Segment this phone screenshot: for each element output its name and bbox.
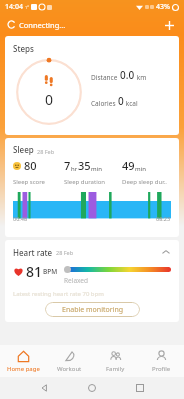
- staticText: 00:48: [13, 215, 28, 222]
- staticText: km: [135, 73, 147, 82]
- staticText: 28 Feb: [56, 249, 74, 256]
- staticText: min: [135, 165, 146, 173]
- staticText: 0: [45, 90, 54, 109]
- staticText: Latest resting heart rate 70 bpm: [13, 290, 104, 298]
- staticText: hr: [71, 165, 78, 173]
- staticText: 0.0: [120, 68, 135, 82]
- button[interactable]: Steps: [5, 36, 179, 135]
- staticText: 43%: [156, 2, 170, 12]
- staticText: Sleep: [13, 144, 34, 155]
- button[interactable]: Family: [92, 345, 138, 377]
- button[interactable]: Workout: [46, 345, 92, 377]
- button[interactable]: Home page: [0, 345, 46, 377]
- staticText: Calories: [91, 99, 118, 108]
- staticText: 28 Feb: [37, 148, 55, 155]
- staticText: Enable monitoring: [62, 305, 124, 315]
- staticText: 81: [26, 262, 43, 281]
- staticText: Steps: [13, 43, 34, 54]
- staticText: Relaxed: [64, 276, 89, 285]
- staticText: Sleep score: [13, 178, 45, 186]
- staticText: 80: [24, 158, 37, 173]
- staticText: Deep sleep dur..: [122, 178, 167, 186]
- button[interactable]: Sleep: [5, 138, 179, 237]
- button[interactable]: Enable monitoring: [45, 302, 140, 317]
- button[interactable]: Add device: [161, 17, 177, 33]
- staticText: min: [91, 165, 102, 173]
- button[interactable]: Collapse: [160, 246, 172, 258]
- staticText: Distance: [91, 73, 120, 82]
- staticText: 1ª: [25, 5, 29, 10]
- staticText: Profile: [152, 365, 171, 373]
- button[interactable]: Heart rate: [5, 240, 179, 322]
- staticText: 08:23: [156, 215, 171, 222]
- button[interactable]: Profile: [138, 345, 184, 377]
- staticText: 7: [64, 158, 71, 173]
- staticText: 35: [78, 158, 91, 173]
- staticText: Workout: [57, 365, 82, 373]
- staticText: 49: [122, 158, 135, 173]
- staticText: kcal: [124, 99, 138, 108]
- staticText: Heart rate: [13, 247, 53, 258]
- staticText: Connecting...: [19, 20, 66, 30]
- staticText: BPM: [43, 267, 58, 276]
- staticText: Family: [106, 365, 125, 373]
- staticText: Home page: [7, 365, 40, 373]
- staticText: 0: [118, 94, 124, 108]
- staticText: 14:04: [5, 2, 23, 12]
- staticText: Sleep duration: [64, 178, 106, 186]
